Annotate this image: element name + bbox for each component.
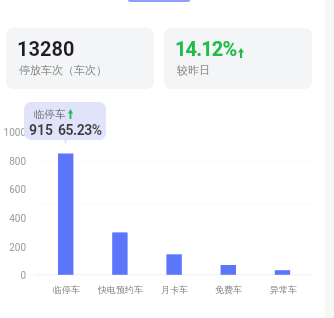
staticText: 65.23% (58, 122, 102, 138)
staticText: 915 (29, 122, 54, 138)
button[interactable]: 临停车 (34, 282, 98, 296)
staticText: 停放车次（车次） (19, 63, 107, 77)
staticText: 临停车 (53, 284, 80, 295)
button[interactable]: 14.12% (164, 28, 312, 89)
button[interactable]: 临停车 (24, 102, 106, 140)
staticText: 400 (9, 213, 26, 225)
button[interactable]: 13280 (6, 28, 154, 89)
staticText: 13280 (17, 37, 75, 60)
button[interactable]: 快电预约车 (88, 282, 152, 296)
staticText: 0 (20, 270, 26, 282)
staticText: 临停车 (34, 108, 66, 121)
staticText: 异常车 (270, 284, 297, 295)
staticText: 较昨日 (177, 63, 210, 77)
staticText: 月卡车 (161, 284, 188, 295)
staticText: 14.12% (175, 37, 237, 60)
button[interactable]: 免费车 (196, 282, 260, 296)
staticText: 600 (9, 184, 26, 196)
button[interactable]: 选中的标签 (128, 0, 190, 2)
button[interactable]: 月卡车 (142, 282, 206, 296)
staticText: 免费车 (215, 284, 242, 295)
staticText: 800 (9, 156, 26, 168)
staticText: 快电预约车 (98, 284, 143, 295)
button[interactable]: 异常车 (251, 282, 315, 296)
staticText: 200 (9, 242, 26, 254)
staticText: 1000 (3, 127, 26, 139)
